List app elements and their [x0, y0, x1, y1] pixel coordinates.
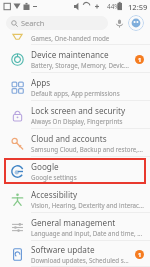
button[interactable]: Voice search [112, 16, 126, 30]
staticText: 12:59 [128, 2, 148, 12]
staticText: Device maintenance [31, 49, 109, 60]
staticText: 44% [107, 2, 120, 11]
button[interactable]: Account [128, 15, 144, 31]
staticText: Accessibility [31, 189, 78, 200]
button[interactable]: Games, One-handed mode [0, 33, 150, 45]
staticText: Games, One-handed mode [31, 34, 110, 42]
staticText: Google [31, 161, 59, 172]
staticText: Software update [31, 244, 95, 255]
staticText: Vision, Hearing, Dexterity and interacti… [31, 201, 144, 209]
button[interactable]: Apps [0, 73, 150, 101]
button[interactable]: General management [0, 213, 150, 241]
staticText: Download updates, Scheduled soft... [31, 256, 132, 264]
staticText: Default apps, App permissions [31, 89, 120, 97]
staticText: 1 [138, 251, 142, 259]
staticText: Google settings [31, 173, 77, 181]
staticText: Cloud and accounts [31, 133, 107, 144]
staticText: Battery, Storage, Memory, Device se... [31, 61, 132, 69]
staticText: General management [31, 217, 116, 228]
button[interactable]: Device maintenance [0, 45, 150, 73]
staticText: Search [21, 18, 45, 28]
staticText: 1 [138, 56, 142, 64]
staticText: Language and input, Date and time, Reset [31, 229, 144, 237]
button[interactable]: Accessibility [0, 185, 150, 213]
staticText: Samsung Cloud, Backup and restore, Smart… [31, 145, 144, 153]
staticText: Always On Display, Fingerprints [31, 117, 123, 125]
staticText: Lock screen and security [31, 105, 126, 116]
button[interactable]: Lock screen and security [0, 101, 150, 129]
button[interactable]: Search [6, 16, 108, 30]
button[interactable]: Software update [0, 241, 150, 267]
button[interactable]: Cloud and accounts [0, 129, 150, 157]
button[interactable]: Google [4, 158, 146, 184]
staticText: Apps [31, 77, 51, 88]
